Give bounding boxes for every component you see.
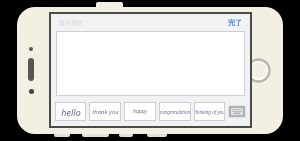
button[interactable]: Keyboard xyxy=(228,105,246,118)
button[interactable]: 取り消す xyxy=(57,17,86,29)
staticText: happy birthday xyxy=(124,108,156,115)
button[interactable]: hello xyxy=(55,102,86,121)
button[interactable]: 完了 xyxy=(226,16,244,29)
staticText: thinking of you xyxy=(194,109,225,115)
button[interactable]: thank you xyxy=(89,102,121,121)
button[interactable]: happy birthday xyxy=(124,102,156,121)
staticText: 完了 xyxy=(228,18,242,27)
staticText: congratulations xyxy=(159,109,191,115)
button[interactable]: congratulations xyxy=(159,102,191,121)
button[interactable]: Home xyxy=(245,57,272,84)
button[interactable]: thinking of you xyxy=(194,102,225,121)
button[interactable] xyxy=(56,31,245,96)
staticText: thank you xyxy=(92,108,119,116)
staticText: 取り消す xyxy=(59,19,84,27)
staticText: hello xyxy=(61,106,81,118)
